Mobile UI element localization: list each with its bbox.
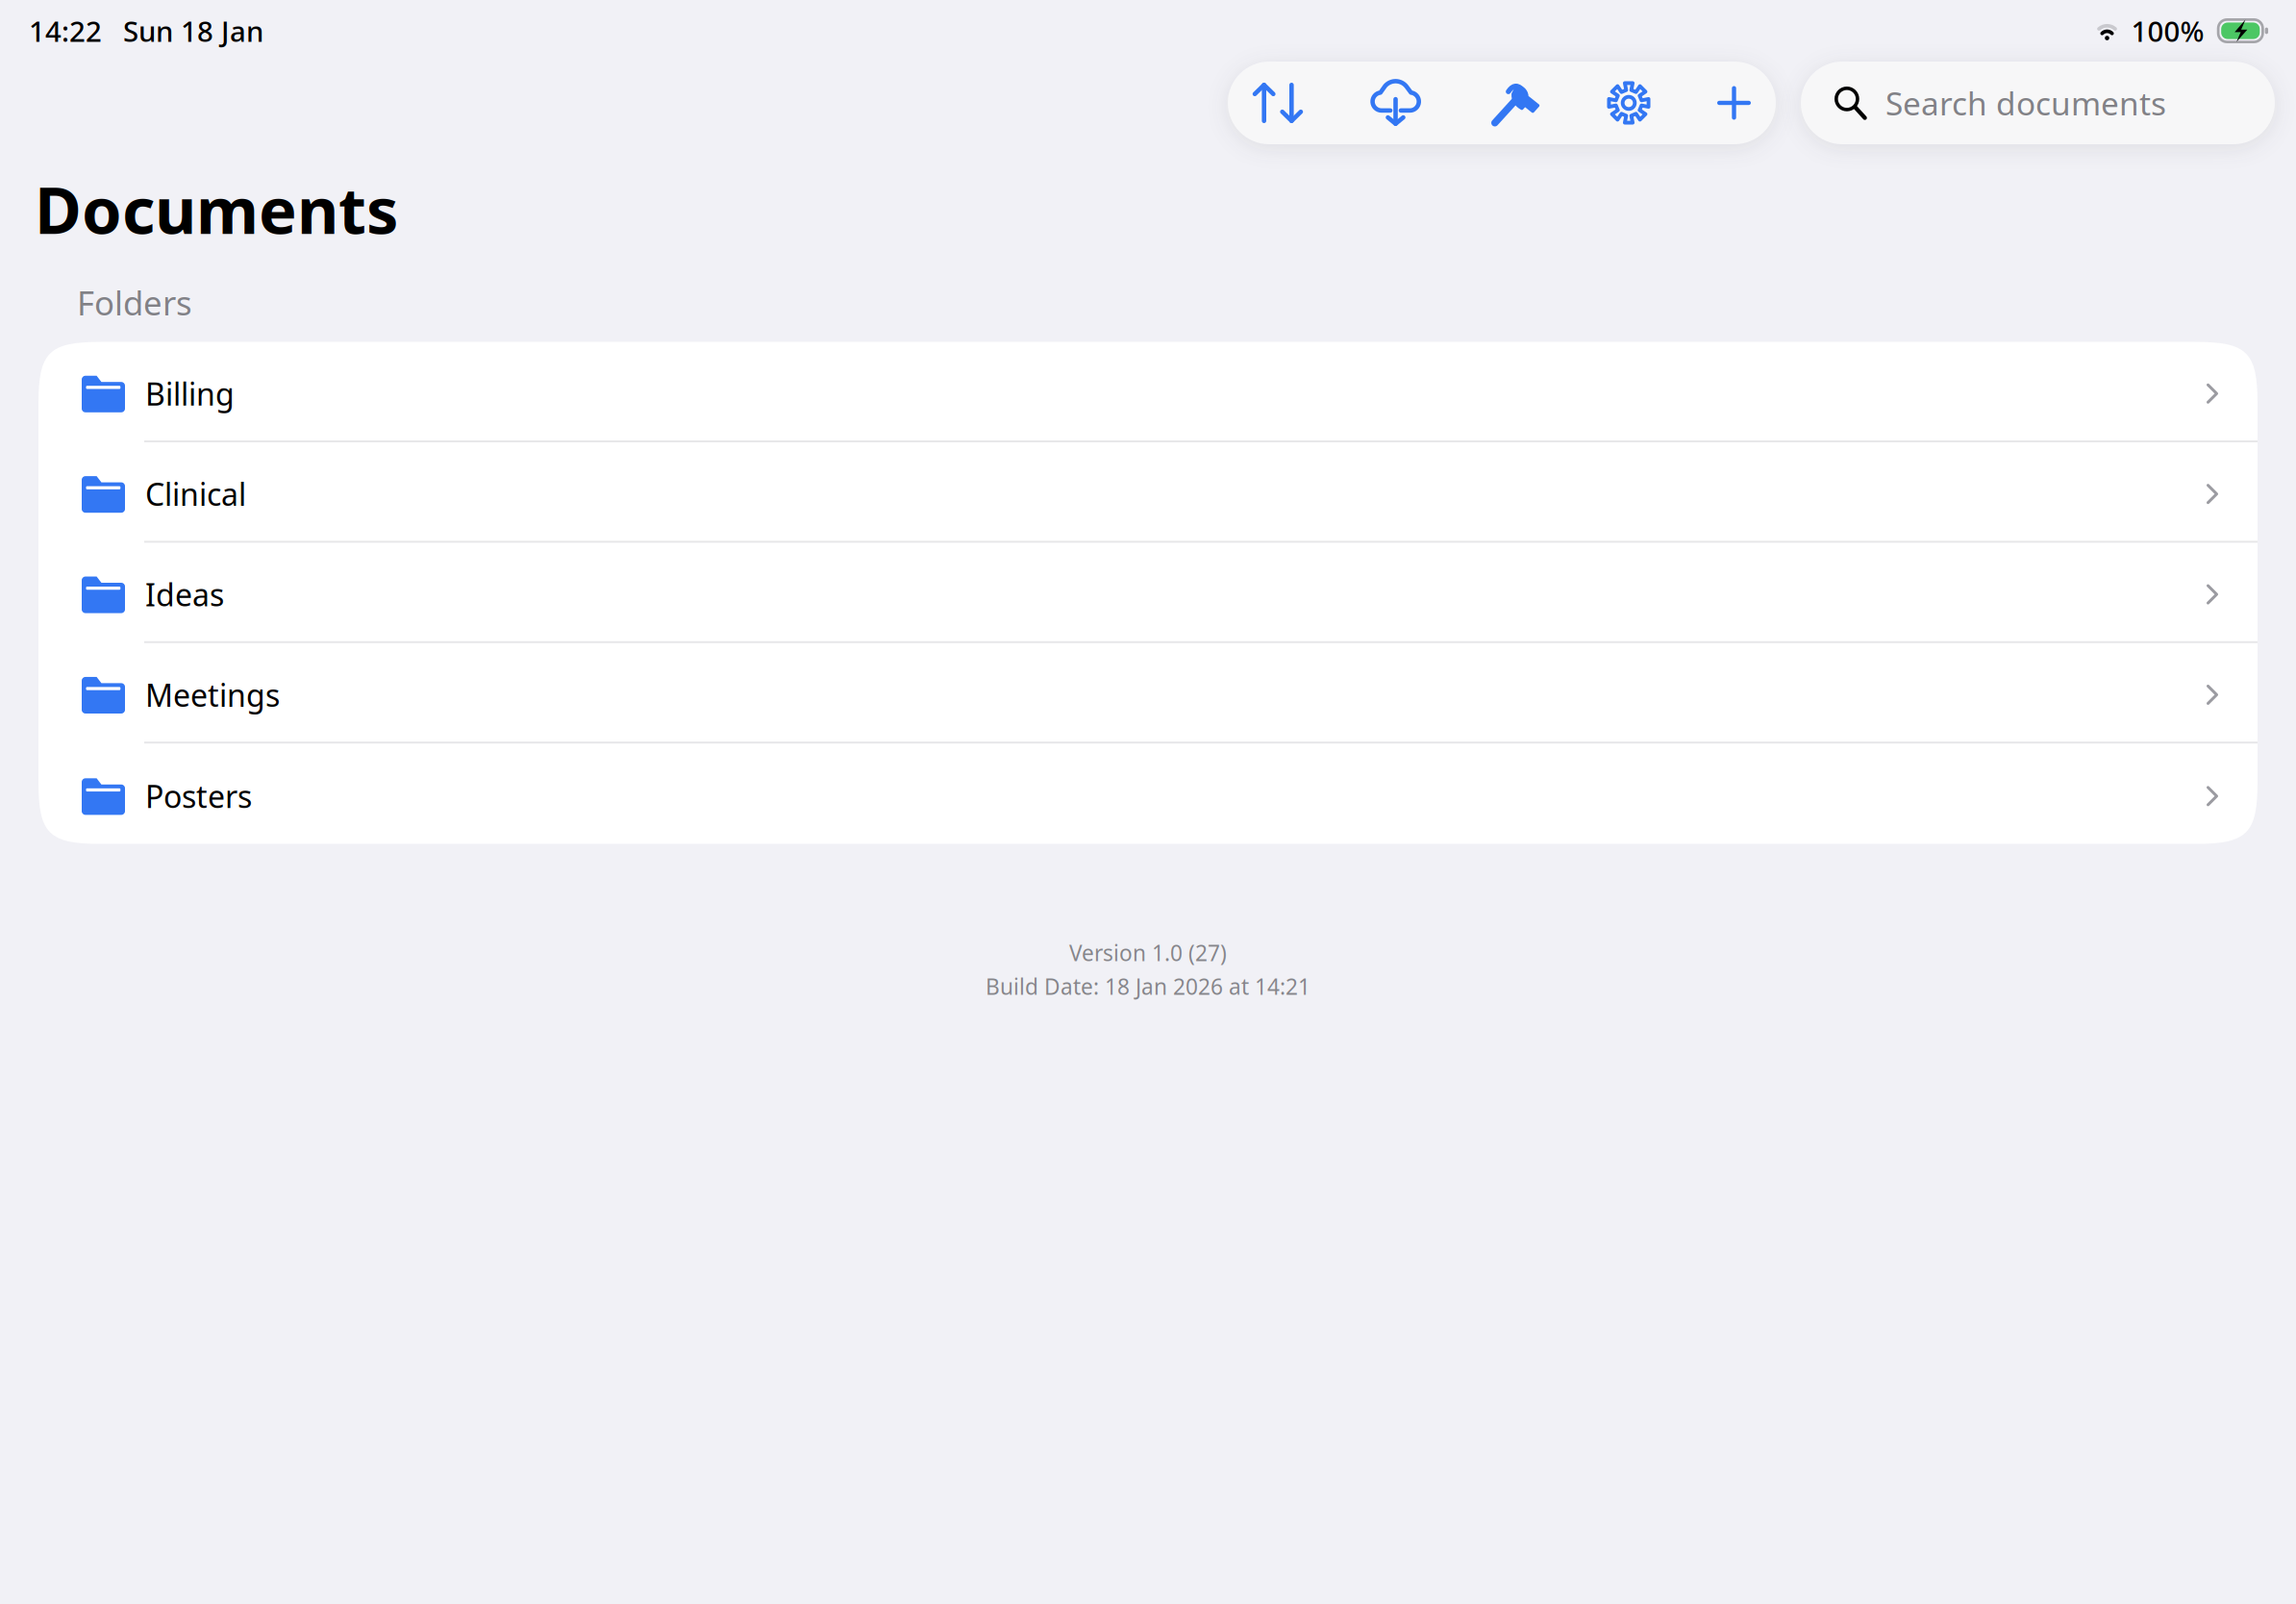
button[interactable]: Posters xyxy=(38,744,2258,844)
staticText: Billing xyxy=(145,373,235,414)
button[interactable]: Settings xyxy=(1607,81,1651,125)
button[interactable]: Clinical xyxy=(38,442,2258,541)
staticText: Sun 18 Jan xyxy=(123,12,263,50)
staticText: 100% xyxy=(2131,12,2204,50)
button[interactable]: Billing xyxy=(38,342,2258,440)
button[interactable]: Meetings xyxy=(38,643,2258,742)
staticText: Clinical xyxy=(145,474,246,514)
button[interactable]: Sort xyxy=(1253,83,1303,123)
staticText: Search documents xyxy=(1885,82,2166,124)
staticText: Posters xyxy=(145,776,252,817)
staticText: Build Date: 18 Jan 2026 at 14:21 xyxy=(986,972,1310,1001)
staticText: Version 1.0 (27) xyxy=(1069,938,1227,967)
button[interactable]: Ideas xyxy=(38,543,2258,641)
staticText: 14:22 xyxy=(29,12,102,50)
button[interactable]: Search documents xyxy=(1801,62,2275,144)
button[interactable]: Add xyxy=(1717,86,1751,120)
button[interactable]: Tools xyxy=(1488,79,1540,127)
staticText: Documents xyxy=(35,166,398,251)
staticText: Ideas xyxy=(145,574,224,615)
staticText: Meetings xyxy=(145,674,280,715)
staticText: Folders xyxy=(77,280,192,325)
button[interactable]: Download xyxy=(1369,80,1422,126)
